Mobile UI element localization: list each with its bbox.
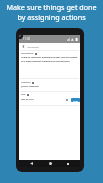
- button[interactable]: Home: [44, 160, 56, 167]
- staticText: Save: [73, 99, 79, 102]
- staticText: Check on contractor maintenance dues, fe…: [21, 56, 79, 62]
- staticText: May 22, 2021: [21, 98, 34, 101]
- button[interactable]: Back: [19, 43, 27, 50]
- button[interactable]: Save: [71, 98, 80, 102]
- staticText: Johnny Appleseed: [21, 85, 39, 88]
- staticText: Description: [21, 52, 34, 55]
- staticText: Make sure things get done: [6, 2, 97, 12]
- staticText: by assigning actions: [17, 12, 86, 22]
- staticText: 11:30: [23, 37, 31, 41]
- button[interactable]: Recent apps: [62, 160, 74, 167]
- staticText: Assignee: [21, 81, 31, 84]
- staticText: Due: [21, 93, 26, 96]
- staticText: Add action: [27, 45, 39, 48]
- button[interactable]: Back: [25, 160, 37, 167]
